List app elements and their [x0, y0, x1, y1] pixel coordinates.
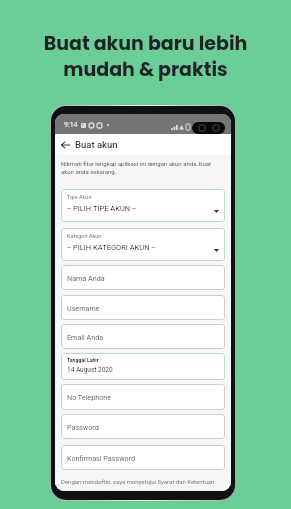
staticText: -- PILIH KATEGORI AKUN --	[67, 243, 156, 252]
staticText: 14 August 2020	[67, 366, 113, 374]
button[interactable]: Password	[61, 414, 225, 439]
staticText: Nama Anda	[67, 274, 105, 282]
staticText: Buat akun baru lebih mudah & praktis	[0, 30, 291, 83]
staticText: -- PILIH TIPE AKUN --	[67, 204, 137, 213]
button[interactable]: Nama Anda	[61, 265, 225, 290]
staticText: Username	[67, 304, 100, 312]
button[interactable]: Email Anda	[61, 324, 225, 349]
staticText: Kategori Akun	[67, 233, 102, 239]
staticText: Tanggal Lahir	[67, 357, 99, 363]
staticText: Nikmati fitur lengkap aplikasi ini denga…	[61, 160, 211, 176]
other: Back	[61, 141, 70, 149]
staticText: Password	[67, 423, 99, 431]
staticText: 9:14	[64, 121, 78, 129]
staticText: Konfirmasi Password	[67, 454, 136, 462]
other: Expand dropdown	[214, 210, 219, 213]
staticText: Dengan mendaftar, saya menyetujui Syarat…	[61, 478, 215, 485]
staticText: No Telephone	[67, 393, 112, 401]
button[interactable]: Back	[55, 135, 126, 154]
button[interactable]: No Telephone	[61, 384, 225, 410]
other: Expand dropdown	[214, 249, 219, 252]
staticText: Email Anda	[67, 333, 104, 341]
staticText: Buat akun	[75, 139, 118, 150]
button[interactable]: Username	[61, 295, 225, 320]
button[interactable]: Tipe Akun	[61, 189, 225, 222]
button[interactable]: Tanggal Lahir	[61, 353, 225, 380]
staticText: Tipe Akun	[67, 194, 92, 200]
button[interactable]: Kategori Akun	[61, 228, 225, 261]
button[interactable]: Konfirmasi Password	[61, 445, 225, 470]
